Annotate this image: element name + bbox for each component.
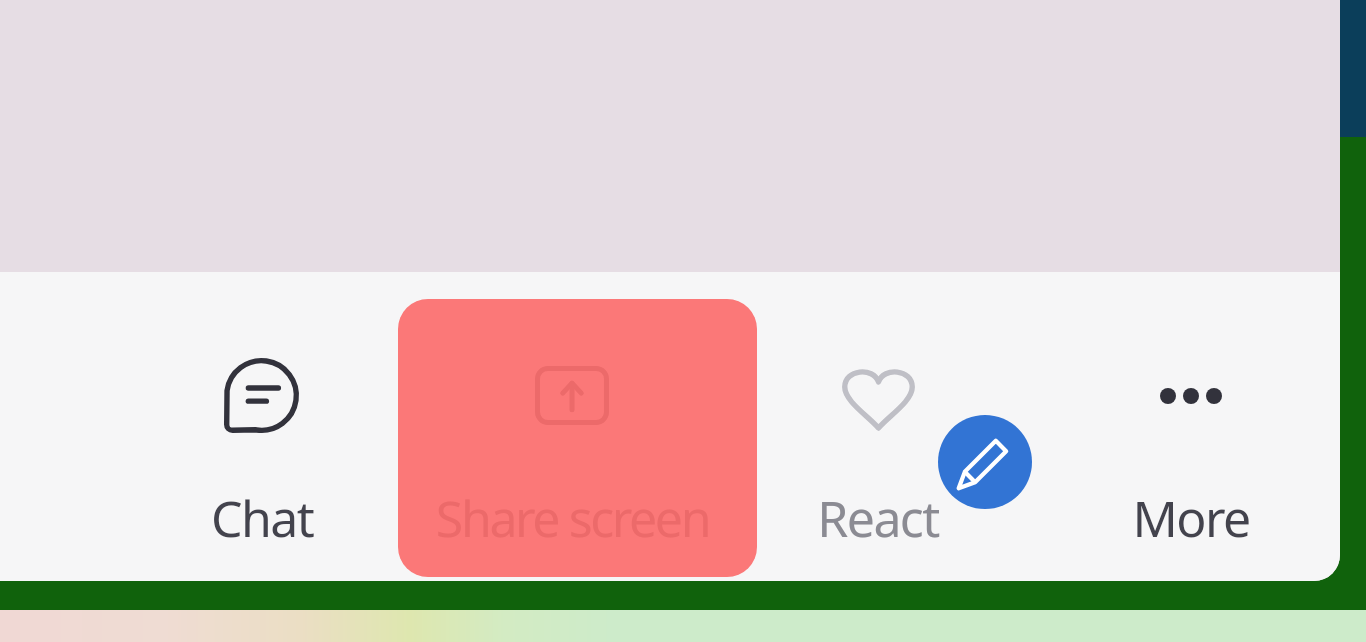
staticText: React (766, 484, 990, 552)
button[interactable]: Chat (150, 330, 374, 556)
button[interactable]: React (766, 330, 990, 556)
button[interactable]: Share screen (398, 299, 757, 577)
button[interactable]: More (1079, 330, 1303, 556)
staticText: Chat (150, 484, 374, 552)
staticText: Share screen (398, 484, 752, 552)
button[interactable]: Edit (938, 415, 1032, 509)
staticText: More (1079, 484, 1303, 552)
